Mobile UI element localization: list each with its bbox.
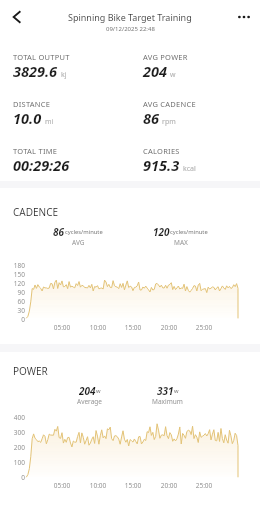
staticText: 150 — [0, 270, 25, 279]
staticText: w — [170, 70, 176, 80]
staticText: kj — [61, 70, 67, 80]
staticText: 204 — [143, 61, 167, 81]
staticText: TOTAL TIME — [13, 146, 58, 156]
staticText: 09/12/2025 22:48 — [106, 25, 155, 33]
staticText: 200 — [0, 443, 25, 452]
staticText: 86 — [53, 225, 65, 236]
staticText: 25:00 — [189, 481, 219, 490]
staticText: 60 — [0, 297, 25, 306]
staticText: 0 — [0, 473, 25, 482]
staticText: mi — [45, 117, 54, 127]
staticText: 86 — [143, 108, 159, 128]
staticText: 400 — [0, 413, 25, 422]
staticText: 05:00 — [47, 323, 77, 332]
staticText: 25:00 — [189, 323, 219, 332]
staticText: 15:00 — [118, 323, 148, 332]
staticText: 20:00 — [154, 481, 184, 490]
staticText: 30 — [0, 306, 25, 315]
staticText: 204 — [79, 384, 96, 395]
staticText: Maximum — [152, 397, 183, 406]
staticText: 15:00 — [118, 481, 148, 490]
staticText: 0 — [0, 315, 25, 324]
staticText: 120 — [153, 225, 170, 236]
staticText: w — [174, 387, 179, 395]
staticText: 10:00 — [83, 323, 113, 332]
staticText: kcal — [183, 164, 196, 174]
staticText: 20:00 — [154, 323, 184, 332]
staticText: cycles/minute — [170, 228, 208, 236]
staticText: Spinning Bike Target Training — [68, 11, 192, 23]
staticText: POWER — [13, 364, 48, 376]
staticText: AVG POWER — [143, 52, 188, 62]
staticText: AVG CADENCE — [143, 99, 196, 109]
staticText: 100 — [0, 458, 25, 467]
staticText: 3829.6 — [13, 61, 58, 81]
staticText: 10.0 — [13, 108, 42, 128]
staticText: 90 — [0, 288, 25, 297]
staticText: MAX — [174, 238, 188, 247]
staticText: 331 — [157, 384, 174, 395]
staticText: 05:00 — [47, 481, 77, 490]
staticText: 120 — [0, 279, 25, 288]
button[interactable]: More options — [227, 0, 260, 33]
staticText: TOTAL OUTPUT — [13, 52, 70, 62]
staticText: 300 — [0, 428, 25, 437]
staticText: 915.3 — [143, 155, 180, 175]
staticText: w — [96, 387, 101, 395]
staticText: cycles/minute — [65, 228, 103, 236]
staticText: 00:29:26 — [13, 155, 70, 175]
staticText: 10:00 — [83, 481, 113, 490]
staticText: 180 — [0, 261, 25, 270]
button[interactable]: Back — [0, 0, 33, 33]
staticText: CALORIES — [143, 146, 180, 156]
staticText: AVG — [72, 238, 85, 247]
staticText: rpm — [162, 117, 176, 127]
staticText: CADENCE — [13, 205, 59, 217]
staticText: Average — [77, 397, 102, 406]
staticText: DISTANCE — [13, 99, 51, 109]
